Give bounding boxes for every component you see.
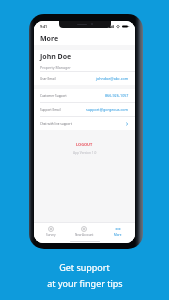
staticText: User Email [40,77,56,81]
staticText: App Version 1.0 [73,151,97,155]
button[interactable]: New Account [67,223,101,240]
staticText: More [40,34,59,44]
staticText: 9:41 [40,24,48,29]
staticText: New Account [75,233,94,237]
button[interactable]: Support Email [34,103,135,116]
button[interactable]: Customer Support [34,89,135,102]
staticText: Property Manager [40,65,71,70]
button[interactable]: User Email [34,72,135,85]
staticText: at your finger tips [47,277,123,289]
staticText: Chat with live support [40,122,72,126]
staticText: Customer Support [40,94,67,98]
button[interactable]: LOGOUT [66,141,103,148]
staticText: Get support [59,261,110,273]
staticText: Support Email [40,108,61,112]
button[interactable]: Chat with live support [34,117,135,130]
button[interactable]: Survey [34,223,67,240]
staticText: John Doe [40,52,72,62]
button[interactable]: More [101,223,135,240]
staticText: johndoe@abc.com [96,76,129,81]
staticText: More [114,233,122,237]
staticText: support@gorgeous.com [86,107,129,112]
staticText: 866-926-1057 [105,93,129,98]
staticText: Survey [46,233,56,237]
staticText: LOGOUT [76,142,93,147]
